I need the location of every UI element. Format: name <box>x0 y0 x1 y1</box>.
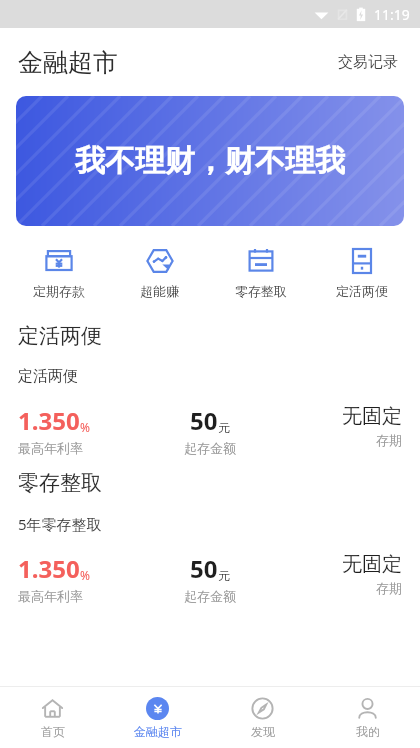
button[interactable]: 零存整取 <box>210 244 311 301</box>
button[interactable]: 我的 <box>315 687 420 748</box>
staticText: 50 <box>190 404 218 437</box>
staticText: 金融超市 <box>134 724 182 739</box>
staticText: 定活两便 <box>336 283 388 299</box>
staticText: 定活两便 <box>18 367 78 386</box>
staticText: 起存金额 <box>184 440 236 456</box>
button[interactable]: 发现 <box>210 687 315 748</box>
staticText: 最高年利率 <box>18 440 83 456</box>
staticText: 元 <box>218 420 230 435</box>
staticText: 5年零存整取 <box>18 514 102 534</box>
button[interactable]: 我不理财，财不理我 <box>16 96 404 226</box>
button[interactable]: 超能赚 <box>109 244 210 301</box>
staticText: 我的 <box>356 724 380 739</box>
staticText: 起存金额 <box>184 588 236 604</box>
staticText: 定期存款 <box>33 283 85 299</box>
staticText: % <box>80 419 90 435</box>
staticText: 金融超市 <box>18 47 118 78</box>
staticText: 交易记录 <box>338 53 398 72</box>
staticText: 定活两便 <box>18 323 102 349</box>
button[interactable]: 定期存款 <box>8 244 109 301</box>
button[interactable]: 交易记录 <box>334 49 402 76</box>
staticText: 1.350 <box>18 404 80 437</box>
staticText: 我不理财，财不理我 <box>75 142 345 180</box>
button[interactable]: 零存整取 <box>0 470 420 604</box>
staticText: 零存整取 <box>235 283 287 299</box>
staticText: 存期 <box>376 432 402 448</box>
staticText: 发现 <box>251 724 275 739</box>
button[interactable]: 定活两便 <box>311 244 412 301</box>
staticText: 超能赚 <box>140 283 179 299</box>
button[interactable]: 首页 <box>0 687 105 748</box>
staticText: 最高年利率 <box>18 588 83 604</box>
staticText: 首页 <box>41 724 65 739</box>
staticText: 无固定 <box>342 404 402 429</box>
staticText: % <box>80 567 90 583</box>
staticText: 元 <box>218 568 230 583</box>
staticText: 11:19 <box>374 5 410 24</box>
staticText: 1.350 <box>18 552 80 585</box>
staticText: 存期 <box>376 580 402 596</box>
staticText: 零存整取 <box>18 470 102 496</box>
button[interactable]: 定活两便 <box>0 323 420 456</box>
staticText: 无固定 <box>342 552 402 577</box>
button[interactable]: 金融超市 <box>105 687 210 748</box>
staticText: 50 <box>190 552 218 585</box>
